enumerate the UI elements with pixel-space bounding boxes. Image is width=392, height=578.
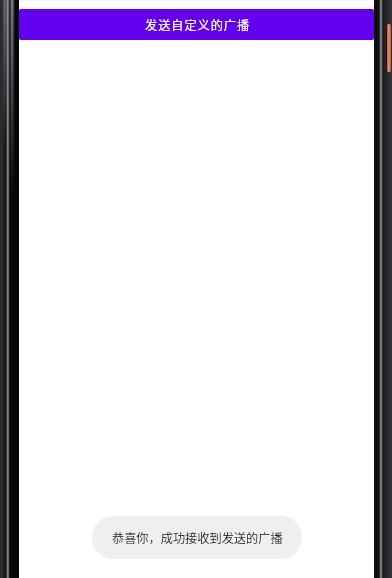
button[interactable]: 发送自定义的广播 <box>19 9 374 40</box>
staticText: 恭喜你，成功接收到发送的广播 <box>112 529 283 547</box>
staticText: 发送自定义的广播 <box>145 16 251 34</box>
